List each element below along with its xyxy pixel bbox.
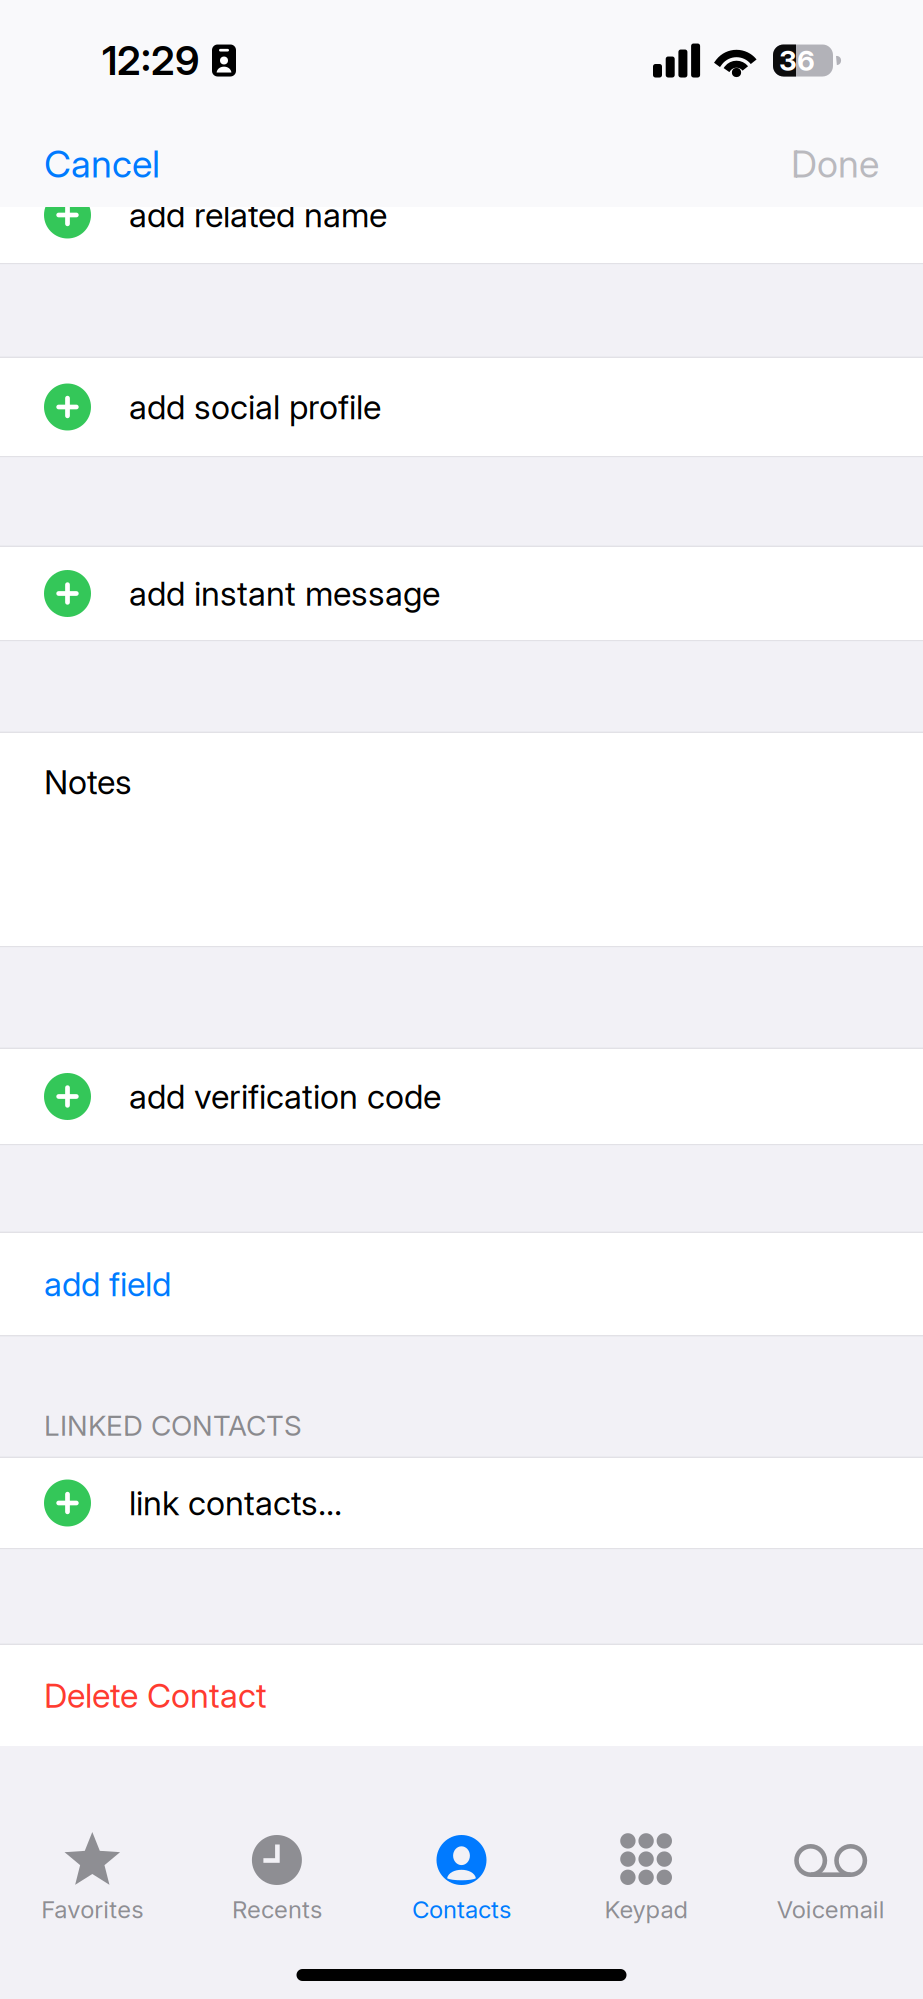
staticText: Done <box>791 141 879 187</box>
staticText: Contacts <box>412 1895 511 1924</box>
button[interactable]: Recents <box>185 1829 369 1969</box>
staticText: Favorites <box>41 1895 143 1924</box>
button[interactable]: link contacts... <box>0 1458 923 1548</box>
button[interactable]: add field <box>0 1233 923 1335</box>
button[interactable]: Cancel <box>0 121 184 207</box>
staticText: Notes <box>44 762 132 802</box>
staticText: add related name <box>129 195 387 235</box>
button[interactable]: Notes <box>0 733 923 946</box>
button[interactable]: Delete Contact <box>0 1645 923 1746</box>
staticText: add field <box>44 1264 171 1304</box>
button[interactable]: Favorites <box>0 1829 185 1969</box>
button[interactable]: Voicemail <box>738 1829 923 1969</box>
staticText: add instant message <box>129 573 440 614</box>
staticText: 36 <box>779 44 815 77</box>
staticText: link contacts... <box>129 1483 342 1523</box>
staticText: add social profile <box>129 387 381 427</box>
button[interactable]: Keypad <box>554 1829 738 1969</box>
staticText: Cancel <box>44 141 160 187</box>
staticText: Recents <box>232 1895 322 1924</box>
button[interactable]: add social profile <box>0 358 923 456</box>
staticText: Keypad <box>605 1895 688 1924</box>
button[interactable]: add related name <box>0 207 923 263</box>
staticText: LINKED CONTACTS <box>44 1409 302 1443</box>
button[interactable]: Done <box>767 121 923 207</box>
button[interactable]: add instant message <box>0 547 923 640</box>
staticText: 12:29 <box>102 36 199 85</box>
staticText: add verification code <box>129 1076 441 1117</box>
button[interactable]: add verification code <box>0 1049 923 1144</box>
button[interactable]: Contacts <box>369 1829 554 1969</box>
staticText: Delete Contact <box>44 1675 267 1716</box>
staticText: Voicemail <box>777 1895 885 1924</box>
